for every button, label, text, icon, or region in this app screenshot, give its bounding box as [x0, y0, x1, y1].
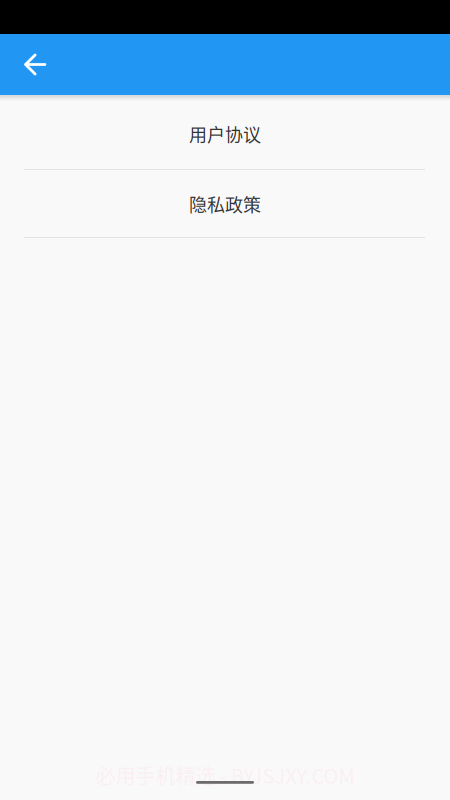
- staticText: 用户协议: [189, 121, 261, 147]
- button[interactable]: 用户协议: [0, 102, 450, 169]
- button[interactable]: Back: [0, 34, 70, 95]
- staticText: 隐私政策: [189, 191, 261, 217]
- button[interactable]: 隐私政策: [0, 170, 450, 237]
- staticText: 必用手机精选 - BYJSJXY.COM: [95, 760, 354, 789]
